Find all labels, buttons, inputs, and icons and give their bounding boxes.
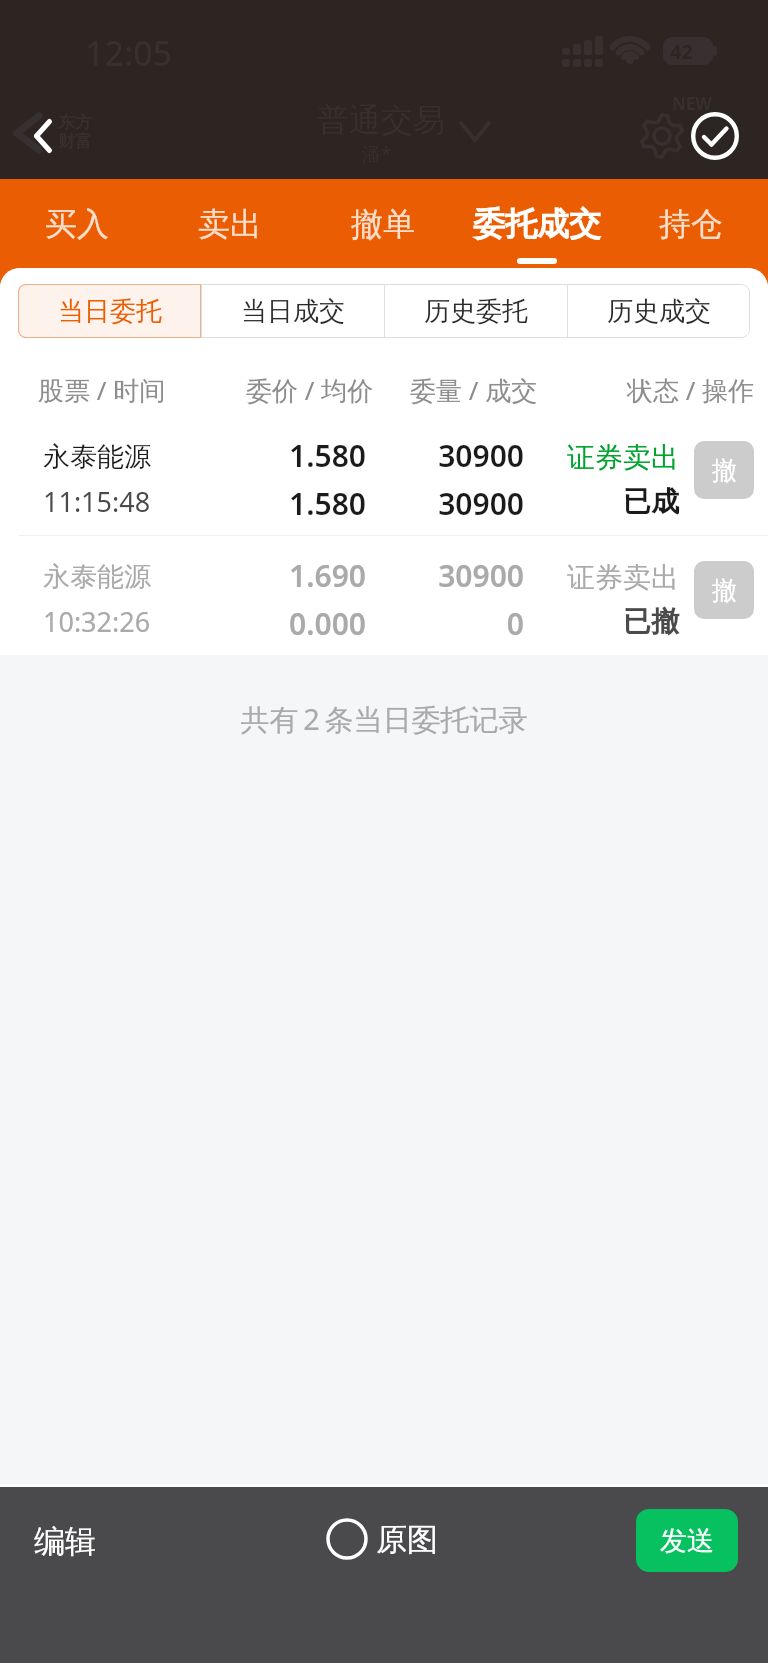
staticText: 委托成交	[473, 204, 601, 244]
staticText: 证券卖出	[529, 440, 679, 475]
staticText: 30900	[374, 435, 524, 476]
staticText: 发送	[660, 1524, 714, 1558]
staticText: NEW	[672, 92, 712, 115]
button[interactable]: 卖出	[153, 179, 306, 268]
button[interactable]: 撤	[694, 441, 754, 499]
button[interactable]: 撤	[694, 561, 754, 619]
staticText: 共有 2 条当日委托记录	[0, 699, 768, 739]
staticText: 10:32:26	[43, 603, 151, 640]
staticText: 1.580	[186, 483, 366, 524]
staticText: 撤	[712, 575, 737, 606]
button[interactable]: 永泰能源	[0, 416, 768, 535]
button[interactable]: 发送	[636, 1509, 738, 1572]
staticText: 卖出	[198, 204, 262, 244]
button[interactable]: 当日委托	[18, 284, 201, 338]
staticText: 30900	[374, 483, 524, 524]
staticText: 永泰能源	[43, 560, 151, 594]
staticText: 1.690	[186, 555, 366, 596]
staticText: 42	[670, 38, 693, 65]
button[interactable]: 永泰能源	[0, 536, 768, 655]
staticText: 撤	[712, 455, 737, 486]
button[interactable]: Back	[12, 103, 74, 169]
staticText: 0	[374, 603, 524, 644]
staticText: 编辑	[34, 1522, 96, 1561]
button[interactable]: 历史委托	[385, 284, 567, 338]
button[interactable]: 撤单	[306, 179, 460, 268]
button[interactable]: 编辑	[34, 1522, 96, 1561]
staticText: 当日委托	[58, 295, 162, 328]
staticText: 委量 / 成交	[410, 372, 538, 408]
staticText: 普通交易	[317, 100, 445, 140]
staticText: 已成	[529, 484, 679, 519]
staticText: 永泰能源	[43, 440, 151, 474]
button[interactable]: 历史成交	[568, 284, 750, 338]
staticText: 状态 / 操作	[627, 372, 755, 408]
staticText: 历史成交	[607, 295, 711, 328]
staticText: 股票 / 时间	[38, 372, 166, 408]
staticText: 30900	[374, 555, 524, 596]
button[interactable]: Confirm	[683, 104, 747, 168]
button[interactable]: 委托成交	[460, 179, 614, 268]
staticText: 当日成交	[241, 295, 345, 328]
staticText: 买入	[45, 204, 109, 244]
staticText: 历史委托	[424, 295, 528, 328]
button[interactable]: 原图	[326, 1518, 438, 1560]
staticText: 财富	[58, 131, 92, 152]
button[interactable]: 持仓	[614, 179, 768, 268]
staticText: 原图	[376, 1520, 438, 1559]
staticText: 1.580	[186, 435, 366, 476]
staticText: 证券卖出	[529, 560, 679, 595]
staticText: 11:15:48	[43, 483, 151, 520]
staticText: 潘*	[362, 141, 392, 167]
staticText: 东方	[58, 112, 92, 133]
staticText: 12:05	[85, 30, 173, 76]
button[interactable]: 买入	[0, 179, 153, 268]
staticText: 撤单	[351, 204, 415, 244]
staticText: 委价 / 均价	[246, 372, 374, 408]
button[interactable]: 当日成交	[202, 284, 384, 338]
staticText: 已撤	[529, 604, 679, 639]
staticText: 持仓	[659, 204, 723, 244]
staticText: 0.000	[186, 603, 366, 644]
